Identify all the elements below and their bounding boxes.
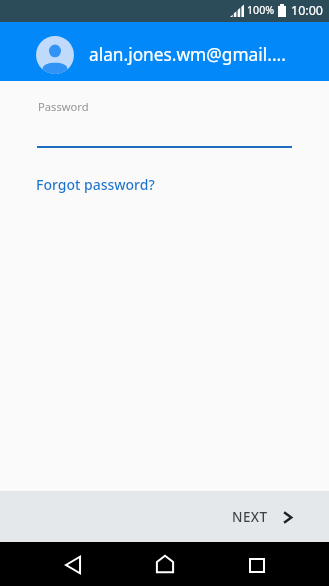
button[interactable]: Recent apps — [227, 542, 287, 586]
button[interactable]: alan.jones.wm@gmail.... — [0, 22, 329, 81]
staticText: Forgot password? — [36, 175, 155, 194]
staticText: Password — [38, 99, 89, 114]
staticText: alan.jones.wm@gmail.... — [89, 43, 286, 67]
button[interactable]: Back — [43, 542, 103, 586]
button[interactable]: Password — [0, 81, 329, 148]
staticText: 10:00 — [291, 2, 323, 19]
button[interactable]: Home — [135, 542, 195, 586]
staticText: NEXT — [232, 508, 268, 526]
button[interactable]: Forgot password? — [0, 173, 191, 196]
staticText: 100% — [247, 3, 275, 18]
button[interactable]: NEXT — [214, 498, 329, 536]
